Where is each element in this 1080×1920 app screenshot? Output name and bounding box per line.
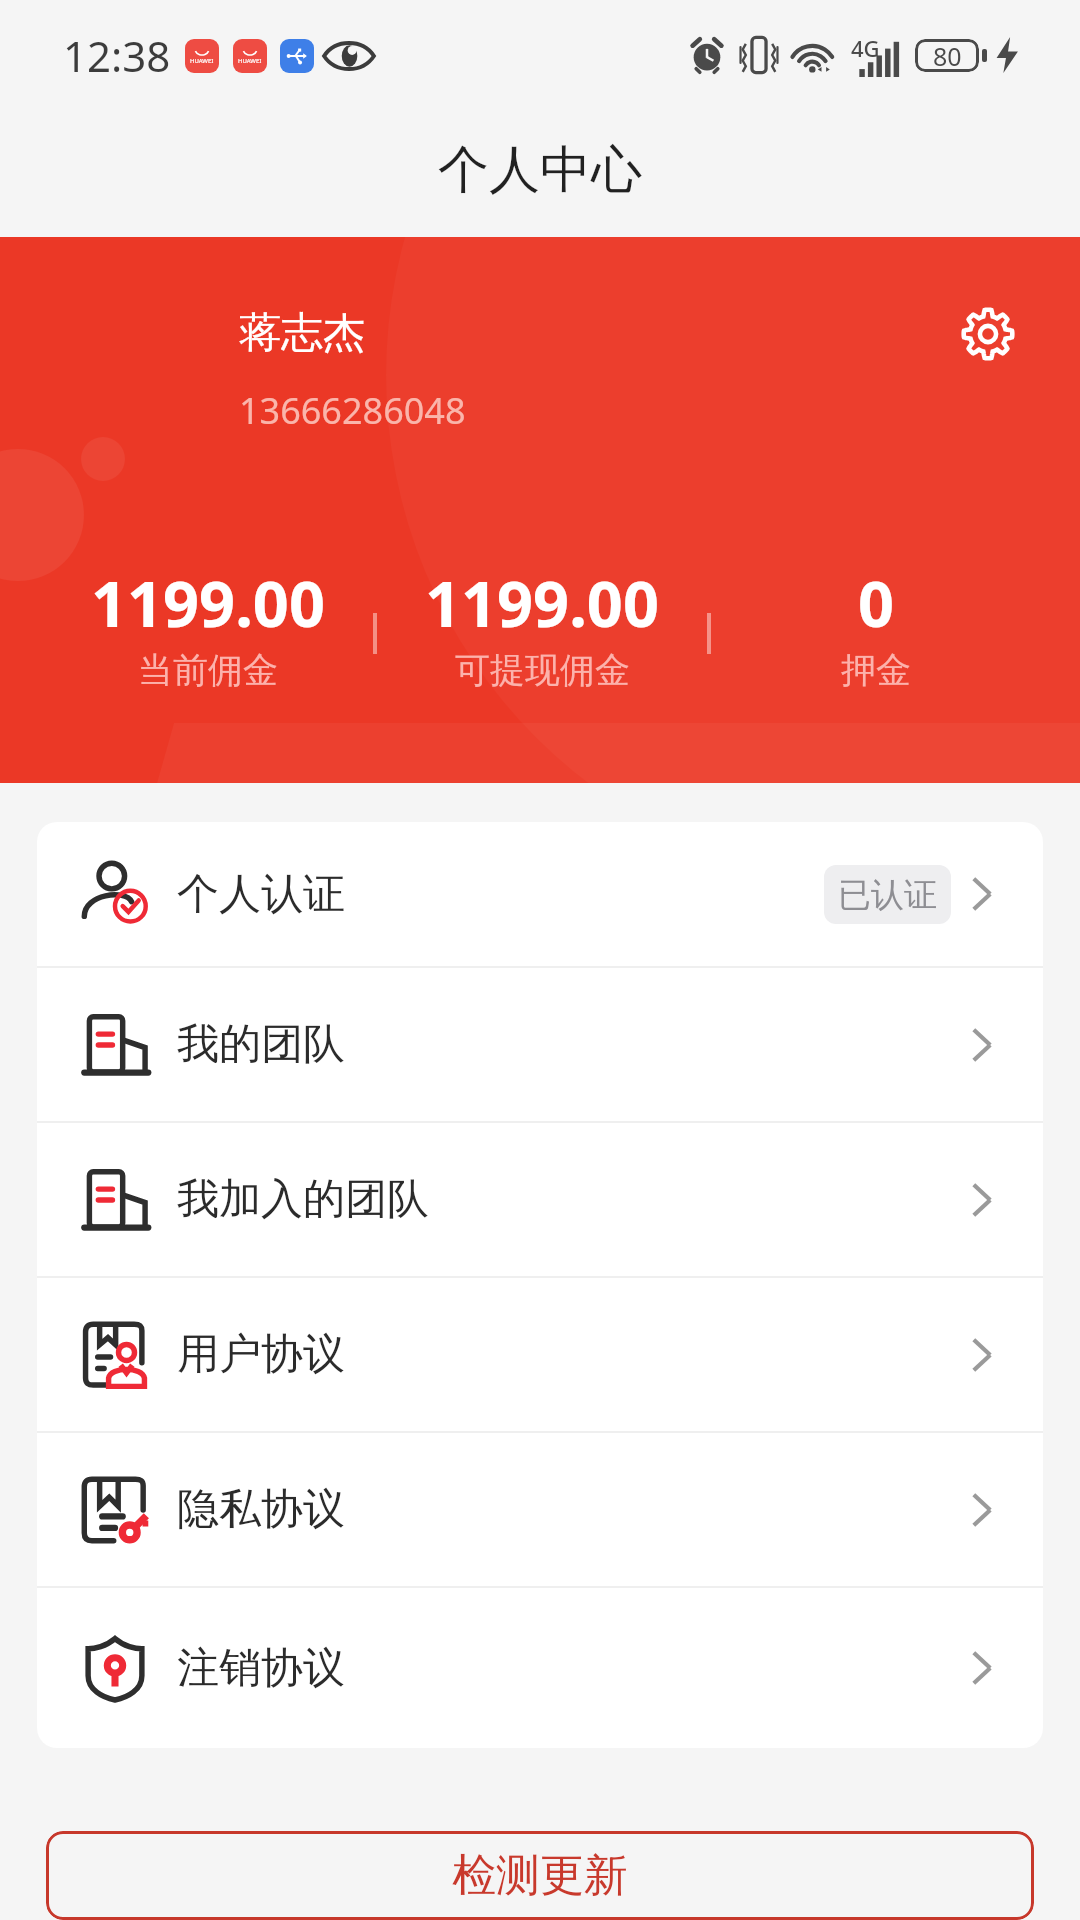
staticText: 13666286048 xyxy=(239,386,466,435)
button[interactable]: 0 xyxy=(711,560,1041,692)
staticText: 已认证 xyxy=(838,874,937,916)
staticText: 可提现佣金 xyxy=(455,648,630,692)
staticText: 注销协议 xyxy=(177,1642,345,1695)
staticText: 0 xyxy=(858,560,895,646)
staticText: 我的团队 xyxy=(177,1018,345,1071)
staticText: 80 xyxy=(933,39,962,72)
button[interactable]: Settings xyxy=(952,298,1024,370)
button[interactable]: 用户协议 xyxy=(37,1278,1043,1431)
button[interactable]: 1199.00 xyxy=(377,560,707,692)
button[interactable]: 隐私协议 xyxy=(37,1433,1043,1586)
button[interactable]: 我加入的团队 xyxy=(37,1123,1043,1276)
staticText: 隐私协议 xyxy=(177,1483,345,1536)
staticText: 用户协议 xyxy=(177,1328,345,1381)
staticText: HUAWEI xyxy=(190,57,214,65)
staticText: 个人认证 xyxy=(177,868,345,921)
staticText: 当前佣金 xyxy=(138,648,278,692)
staticText: 检测更新 xyxy=(452,1848,628,1903)
staticText: HUAWEI xyxy=(238,57,262,65)
button[interactable]: 个人认证 xyxy=(37,822,1043,966)
staticText: 4G xyxy=(851,33,880,63)
button[interactable]: 注销协议 xyxy=(37,1588,1043,1748)
staticText: 蒋志杰 xyxy=(239,307,365,360)
staticText: 个人中心 xyxy=(438,138,642,202)
staticText: 我加入的团队 xyxy=(177,1173,429,1226)
button[interactable]: 检测更新 xyxy=(46,1831,1034,1920)
button[interactable]: 我的团队 xyxy=(37,968,1043,1121)
staticText: 1199.00 xyxy=(91,560,325,646)
staticText: 12:38 xyxy=(63,27,171,84)
staticText: 押金 xyxy=(841,648,911,692)
button[interactable]: 1199.00 xyxy=(43,560,373,692)
staticText: 1199.00 xyxy=(425,560,659,646)
